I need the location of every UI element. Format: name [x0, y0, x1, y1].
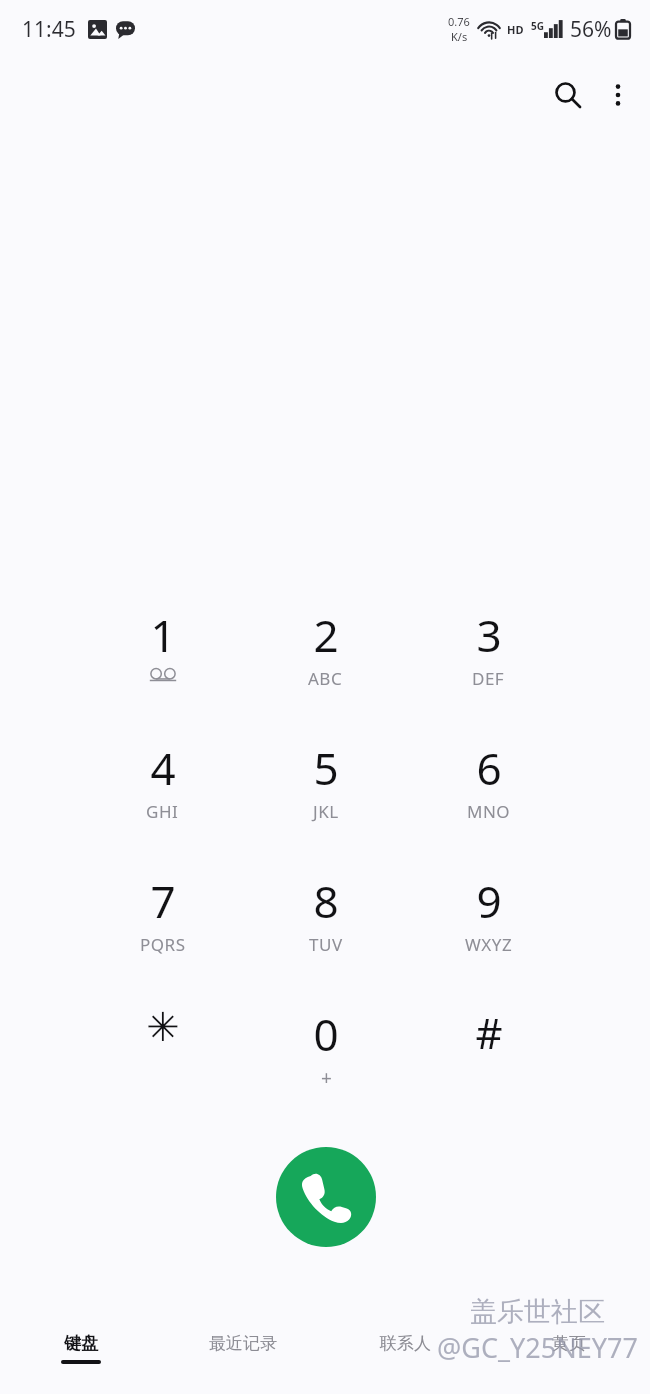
staticText: 盖乐世社区: [470, 1295, 605, 1329]
staticText: @GC_Y25NEY77: [437, 1329, 638, 1366]
staticText: HD: [507, 22, 524, 37]
staticText: 2: [313, 605, 339, 665]
staticText: 11:45: [22, 15, 76, 44]
button[interactable]: 8: [244, 857, 407, 990]
staticText: 56%: [570, 15, 612, 44]
button[interactable]: Search: [542, 69, 594, 121]
staticText: 6: [476, 738, 502, 798]
staticText: #: [475, 1004, 503, 1061]
button[interactable]: 7: [81, 857, 244, 990]
staticText: 3: [476, 605, 502, 665]
staticText: 8: [313, 871, 339, 931]
staticText: 7: [150, 871, 176, 931]
button[interactable]: Call: [276, 1147, 376, 1247]
button[interactable]: ✳: [81, 990, 244, 1123]
staticText: +: [321, 1065, 332, 1091]
staticText: 最近记录: [209, 1333, 277, 1354]
staticText: PQRS: [140, 933, 186, 956]
button[interactable]: 键盘: [0, 1300, 162, 1394]
staticText: 1: [150, 605, 176, 665]
staticText: 5: [313, 738, 339, 798]
button[interactable]: 4: [81, 724, 244, 857]
staticText: ABC: [308, 667, 343, 690]
staticText: ✳: [146, 1004, 180, 1051]
staticText: MNO: [467, 800, 511, 823]
button[interactable]: 3: [407, 591, 570, 724]
staticText: K/s: [451, 29, 468, 44]
button[interactable]: 0: [244, 990, 407, 1123]
staticText: 0.76: [448, 14, 470, 29]
button[interactable]: 6: [407, 724, 570, 857]
staticText: GHI: [146, 800, 179, 823]
staticText: WXYZ: [465, 933, 513, 956]
staticText: JKL: [313, 800, 339, 823]
button[interactable]: 联系人: [324, 1300, 487, 1394]
button[interactable]: 5: [244, 724, 407, 857]
staticText: 黄页: [552, 1333, 586, 1354]
staticText: 0: [313, 1004, 339, 1064]
staticText: TUV: [309, 933, 343, 956]
staticText: 键盘: [64, 1333, 98, 1354]
button[interactable]: 9: [407, 857, 570, 990]
button[interactable]: More options: [592, 69, 644, 121]
staticText: 9: [476, 871, 502, 931]
staticText: 联系人: [380, 1333, 431, 1354]
button[interactable]: #: [407, 990, 570, 1123]
button[interactable]: 2: [244, 591, 407, 724]
staticText: 4: [150, 738, 176, 798]
staticText: DEF: [472, 667, 505, 690]
staticText: 5G: [531, 19, 544, 33]
button[interactable]: 1: [81, 591, 244, 724]
button[interactable]: 最近记录: [162, 1300, 324, 1394]
button[interactable]: 黄页: [487, 1300, 650, 1394]
